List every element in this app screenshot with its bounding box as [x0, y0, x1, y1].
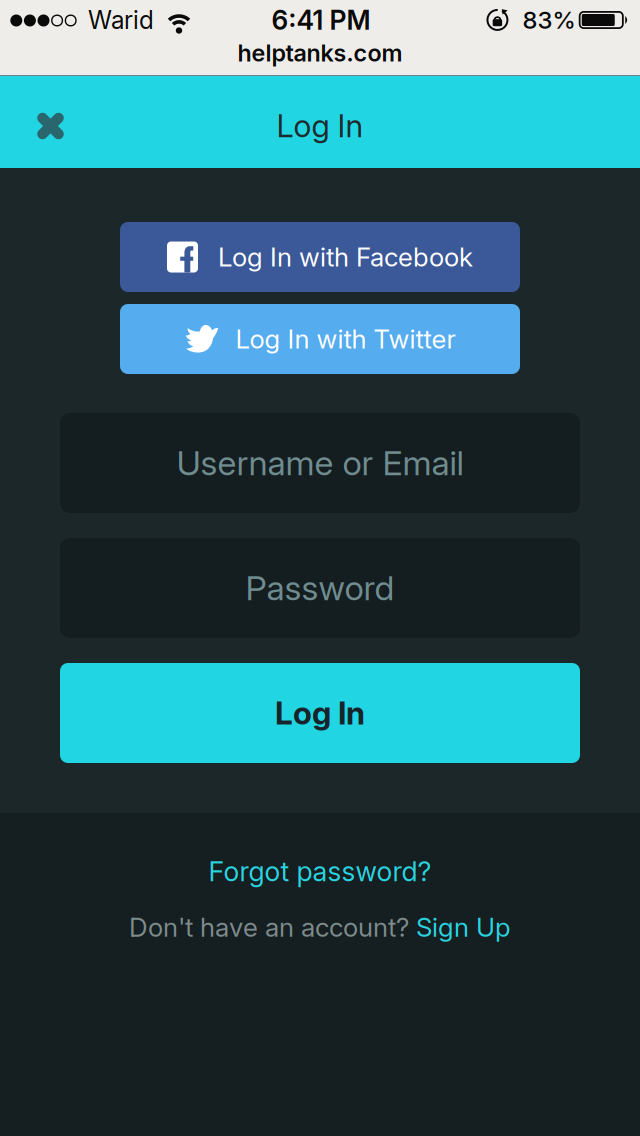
staticText: Log In with Twitter	[235, 323, 455, 355]
staticText: helptanks.com	[237, 39, 402, 67]
staticText: Username or Email	[176, 442, 463, 483]
button[interactable]: Forgot password?	[208, 855, 431, 888]
staticText: 83%	[522, 5, 575, 34]
button[interactable]: Log In with Facebook	[120, 222, 520, 292]
staticText: Log In	[276, 107, 363, 145]
button[interactable]: Log In with Twitter	[120, 304, 520, 374]
staticText: Password	[245, 567, 394, 608]
staticText: Forgot password?	[208, 855, 431, 888]
button[interactable]: Log In	[60, 663, 580, 763]
staticText: Warid	[88, 5, 154, 35]
staticText: Don't have an account?	[129, 912, 416, 943]
staticText: Log In with Facebook	[218, 241, 473, 273]
staticText: Log In	[275, 694, 365, 732]
staticText: Sign Up	[416, 912, 511, 943]
button[interactable]: Close	[12, 80, 88, 172]
button[interactable]: Sign Up	[416, 912, 511, 943]
staticText: 6:41 PM	[271, 4, 370, 36]
